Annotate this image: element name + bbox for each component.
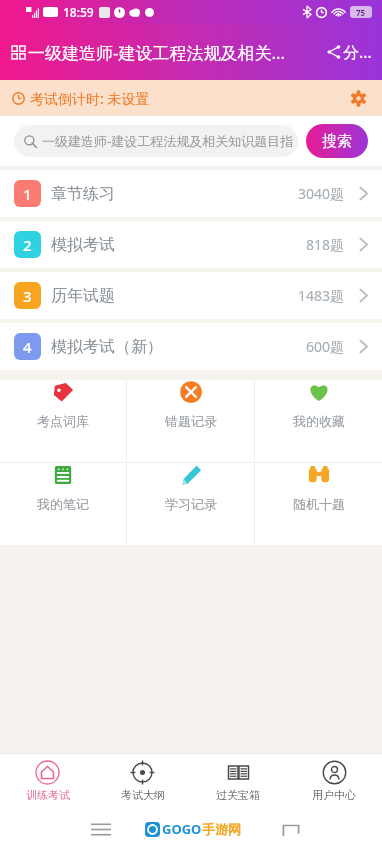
staticText: 错题记录 xyxy=(165,413,217,429)
staticText: 3040题 xyxy=(298,184,345,203)
button[interactable]: 我的收藏 xyxy=(255,380,382,429)
staticText: 手游网 xyxy=(202,821,241,837)
staticText: 2 xyxy=(23,235,32,255)
button[interactable]: 用户中心 xyxy=(286,760,382,802)
button[interactable]: 设置 xyxy=(346,86,370,110)
staticText: 章节练习 xyxy=(51,184,115,204)
staticText: 一级建造师-建设工程法规及相关知识题目指 xyxy=(42,132,294,150)
button[interactable]: 一级建造师-建设工程法规及相关… xyxy=(12,41,285,64)
staticText: 学习记录 xyxy=(165,496,217,512)
staticText: 搜索 xyxy=(322,132,352,151)
button[interactable]: 训练考试 xyxy=(0,760,95,802)
button[interactable]: 4 xyxy=(0,323,382,370)
button[interactable]: 2 xyxy=(0,221,382,268)
staticText: 模拟考试 xyxy=(51,235,115,255)
staticText: 训练考试 xyxy=(26,788,70,802)
staticText: 818题 xyxy=(306,235,345,254)
staticText: 考试大纲 xyxy=(121,788,165,802)
button[interactable]: 3 xyxy=(0,272,382,319)
button[interactable]: 1 xyxy=(0,170,382,217)
staticText: 1 xyxy=(23,184,32,204)
staticText: 考试倒计时: 未设置 xyxy=(30,89,150,108)
staticText: 一级建造师-建设工程法规及相关… xyxy=(28,41,285,64)
button[interactable]: 考试大纲 xyxy=(95,760,190,802)
button[interactable]: 我的笔记 xyxy=(0,463,126,512)
staticText: 600题 xyxy=(306,337,345,356)
button[interactable]: 分享 xyxy=(327,41,372,63)
button[interactable]: Back xyxy=(278,816,304,842)
button[interactable]: 一级建造师-建设工程法规及相关知识题目指 xyxy=(14,125,298,157)
staticText: 考点词库 xyxy=(37,413,89,429)
staticText: 分… xyxy=(343,41,372,63)
staticText: 我的收藏 xyxy=(293,413,345,429)
staticText: 随机十题 xyxy=(293,496,345,512)
staticText: 4 xyxy=(23,337,32,357)
button[interactable]: 搜索 xyxy=(306,124,368,158)
button[interactable]: 考试倒计时: 未设置 xyxy=(0,80,382,116)
staticText: 3 xyxy=(23,286,32,306)
button[interactable]: 考点词库 xyxy=(0,380,126,429)
staticText: 1483题 xyxy=(298,286,345,305)
button[interactable]: 错题记录 xyxy=(127,380,254,429)
button[interactable]: 学习记录 xyxy=(127,463,254,512)
staticText: 用户中心 xyxy=(312,788,356,802)
staticText: 历年试题 xyxy=(51,286,115,306)
staticText: 我的笔记 xyxy=(37,496,89,512)
button[interactable]: 随机十题 xyxy=(255,463,382,512)
button[interactable]: 过关宝箱 xyxy=(190,760,286,802)
staticText: 18:59 xyxy=(63,4,94,20)
staticText: 模拟考试（新） xyxy=(51,337,163,357)
staticText: 75 xyxy=(356,7,366,17)
staticText: 过关宝箱 xyxy=(216,788,260,802)
button[interactable]: Menu xyxy=(88,816,114,842)
staticText: GOGO xyxy=(162,820,202,838)
